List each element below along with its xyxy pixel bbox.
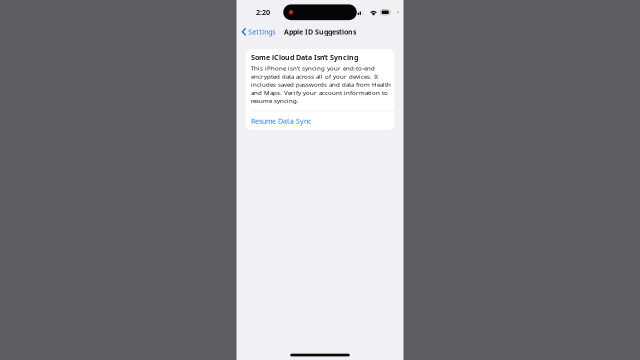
button[interactable]: Settings	[236, 23, 275, 40]
staticText: Settings	[248, 27, 275, 36]
staticText: This iPhone isn’t syncing your end-to-en…	[251, 64, 391, 105]
staticText: 2:20	[256, 7, 270, 17]
staticText: Some iCloud Data Isn’t Syncing	[251, 53, 358, 62]
button[interactable]: Resume Data Sync	[245, 111, 394, 130]
staticText: Resume Data Sync	[251, 116, 311, 126]
staticText: Apple ID Suggestions	[284, 27, 356, 36]
